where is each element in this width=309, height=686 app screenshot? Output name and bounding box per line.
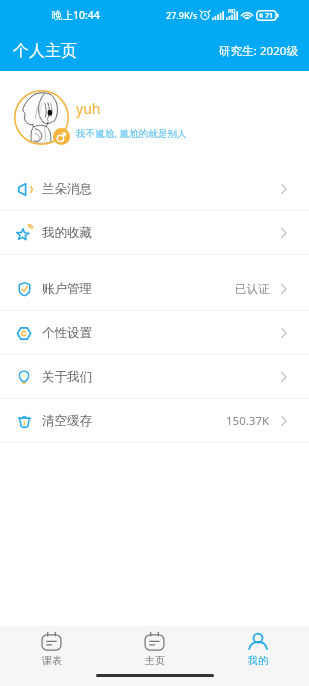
- staticText: 已认证: [235, 282, 270, 296]
- button[interactable]: 课表: [0, 626, 103, 672]
- staticText: 研究生: 2020级: [219, 43, 299, 59]
- staticText: 150.37K: [226, 413, 270, 429]
- staticText: 我的: [248, 654, 268, 667]
- button[interactable]: 主页: [103, 626, 206, 672]
- button[interactable]: 我的收藏: [0, 211, 309, 254]
- button[interactable]: 账户管理: [0, 267, 309, 310]
- staticText: 兰朵消息: [42, 181, 92, 197]
- staticText: 关于我们: [42, 369, 92, 385]
- staticText: 个人主页: [13, 41, 77, 61]
- staticText: 个性设置: [42, 325, 92, 341]
- button[interactable]: 个性设置: [0, 311, 309, 354]
- staticText: 71: [265, 11, 274, 21]
- button[interactable]: Profile: yuh: [0, 71, 309, 167]
- button[interactable]: 关于我们: [0, 355, 309, 398]
- staticText: 账户管理: [42, 281, 92, 297]
- staticText: HD: [228, 8, 236, 15]
- staticText: 晚上10:44: [52, 8, 100, 22]
- staticText: 27.9K/s: [166, 9, 198, 21]
- staticText: 清空缓存: [42, 413, 92, 429]
- staticText: 课表: [42, 654, 62, 667]
- staticText: yuh: [76, 99, 101, 118]
- staticText: 我不尴尬, 尴尬的就是别人: [76, 127, 187, 140]
- button[interactable]: 兰朵消息: [0, 167, 309, 210]
- button[interactable]: 清空缓存: [0, 399, 309, 442]
- staticText: 主页: [145, 654, 165, 667]
- staticText: 我的收藏: [42, 225, 92, 241]
- button[interactable]: 我的: [206, 626, 309, 672]
